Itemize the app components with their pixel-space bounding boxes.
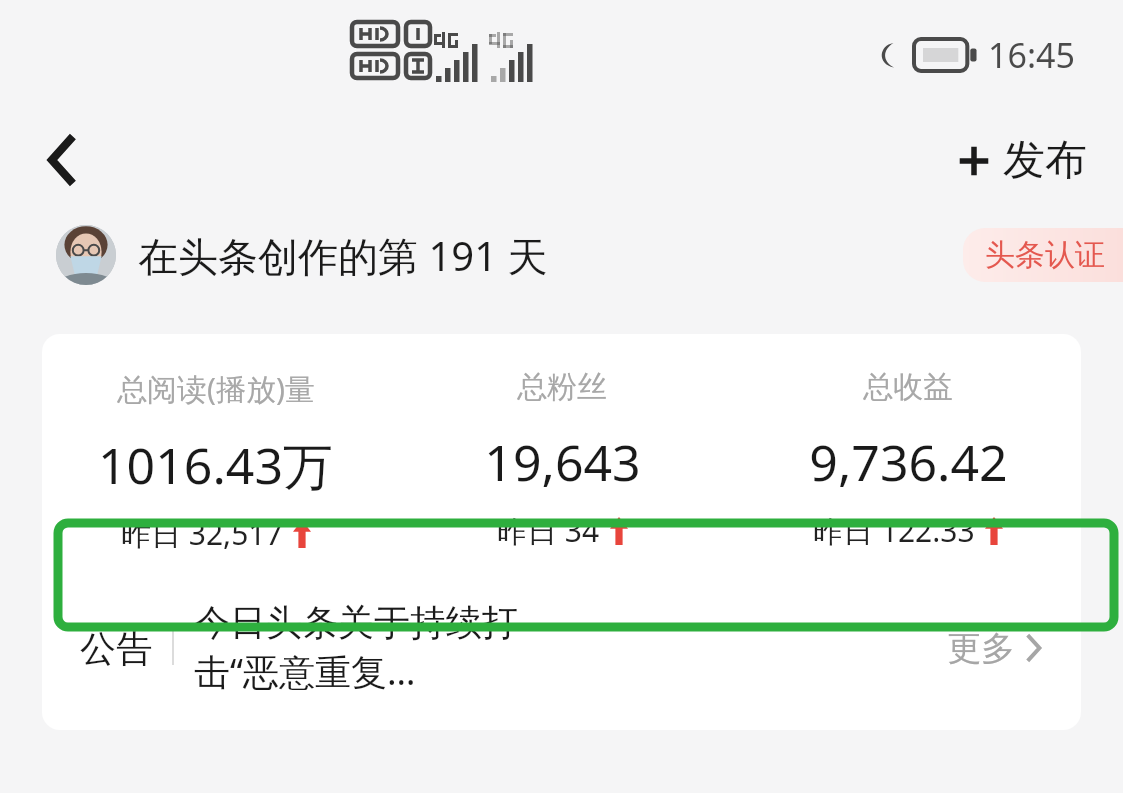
button[interactable]: 在头条创作的第 191 天 [56, 225, 548, 285]
staticText: 在头条创作的第 191 天 [138, 228, 548, 283]
staticText: 1016.43万 [98, 431, 333, 499]
staticText: 总粉丝 [517, 368, 607, 406]
button[interactable]: 公告 [42, 600, 1081, 696]
button[interactable]: 发布 [947, 128, 1097, 193]
staticText: 发布 [1003, 134, 1087, 187]
staticText: 16:45 [988, 32, 1075, 78]
button[interactable]: 总阅读(播放)量 [42, 368, 389, 554]
staticText: 公告 [80, 626, 152, 671]
staticText: 19,643 [484, 428, 641, 496]
staticText: 头条认证 [985, 236, 1105, 274]
staticText: 更多 [947, 627, 1015, 670]
staticText: 总阅读(播放)量 [117, 368, 315, 409]
button[interactable]: Back [26, 124, 98, 196]
staticText: 昨日 122.33 [813, 510, 975, 551]
staticText: 昨日 34 [497, 510, 600, 551]
button[interactable]: 总收益 [735, 368, 1081, 551]
button[interactable]: 头条认证 [963, 228, 1123, 282]
staticText: 昨日 32,517 [121, 513, 283, 554]
button[interactable]: 总粉丝 [389, 368, 735, 551]
staticText: 9,736.42 [809, 428, 1008, 496]
staticText: 总收益 [863, 368, 953, 406]
staticText: 今日头条关于持续打击“恶意重复… [194, 600, 570, 696]
